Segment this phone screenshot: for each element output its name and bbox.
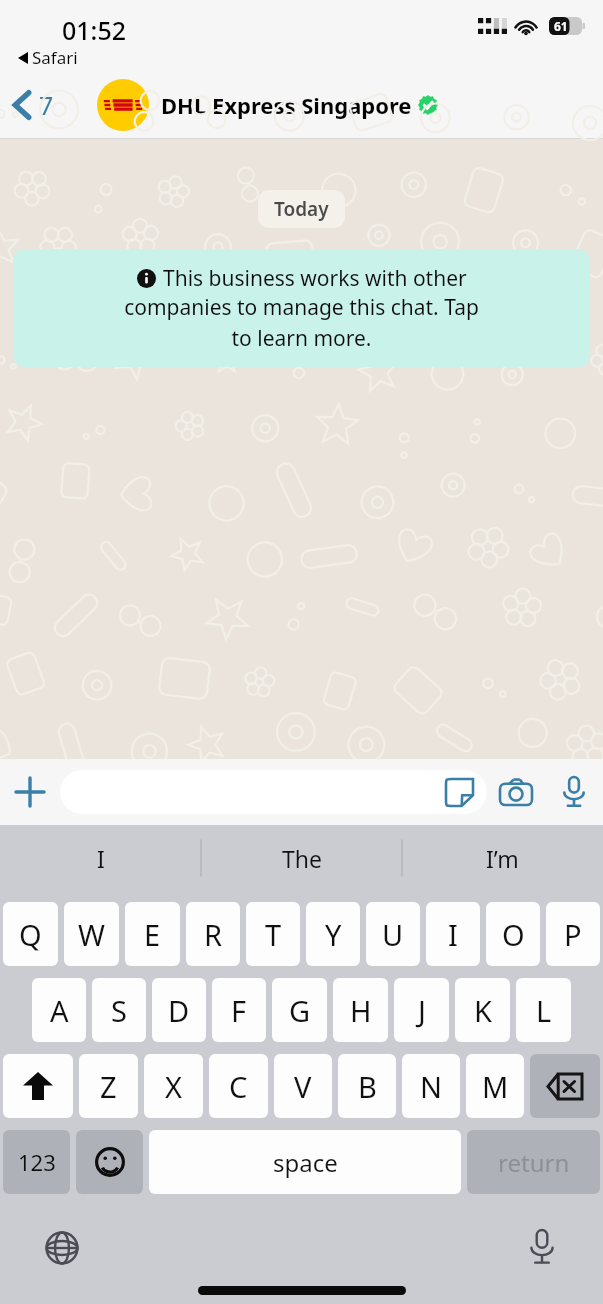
staticText: F (231, 991, 247, 1030)
button[interactable] (60, 770, 487, 814)
staticText: O (502, 915, 525, 954)
staticText: M (482, 1067, 509, 1106)
staticText: U (382, 915, 404, 954)
button[interactable]: C (209, 1054, 268, 1118)
button[interactable]: Attach (0, 762, 60, 822)
button[interactable]: I’m (402, 825, 603, 891)
staticText: return (498, 1146, 570, 1179)
staticText: H (350, 991, 372, 1030)
staticText: J (418, 991, 426, 1030)
button[interactable]: I (0, 825, 201, 891)
button[interactable]: 123 (3, 1130, 70, 1194)
staticText: D (168, 991, 190, 1030)
button[interactable]: Emoji (76, 1130, 143, 1194)
button[interactable]: U (366, 902, 420, 966)
staticText: 7 (39, 88, 54, 122)
button[interactable]: L (516, 978, 571, 1042)
staticText: X (165, 1067, 182, 1106)
button[interactable]: Back, 7 unread (0, 82, 62, 128)
staticText: V (294, 1067, 312, 1106)
button[interactable]: return (467, 1130, 600, 1194)
button[interactable]: space (149, 1130, 461, 1194)
staticText: K (474, 991, 492, 1030)
button[interactable]: M (466, 1054, 524, 1118)
staticText: 61 (554, 18, 568, 34)
staticText: Safari (32, 46, 78, 69)
button[interactable]: S (92, 978, 146, 1042)
button[interactable]: P (546, 902, 600, 966)
button[interactable]: Camera (487, 763, 545, 821)
button[interactable]: N (402, 1054, 460, 1118)
staticText: S (111, 991, 127, 1030)
staticText: The (282, 843, 322, 874)
staticText: T (265, 915, 282, 954)
staticText: DHL Express Singapore (161, 90, 412, 120)
button[interactable]: The (201, 825, 402, 891)
button[interactable]: V (274, 1054, 332, 1118)
staticText: B (358, 1067, 377, 1106)
staticText: companies to manage this chat. Tap to le… (27, 293, 576, 352)
staticText: space (273, 1146, 338, 1179)
button[interactable]: Y (306, 902, 360, 966)
staticText: Y (325, 915, 342, 954)
button[interactable]: G (272, 978, 327, 1042)
staticText: W (78, 915, 105, 954)
button[interactable]: This business works with other (13, 249, 590, 367)
button[interactable]: J (394, 978, 449, 1042)
staticText: Today (274, 196, 329, 222)
button[interactable]: I (426, 902, 480, 966)
button[interactable]: Z (79, 1054, 138, 1118)
button[interactable]: X (144, 1054, 203, 1118)
button[interactable]: W (64, 902, 119, 966)
staticText: Q (19, 915, 42, 954)
staticText: Z (100, 1067, 117, 1106)
button[interactable]: T (246, 902, 300, 966)
staticText: I’m (486, 843, 519, 874)
button[interactable]: A (32, 978, 86, 1042)
button[interactable]: Voice message (545, 763, 603, 821)
staticText: 01:52 (62, 13, 127, 47)
staticText: R (204, 915, 223, 954)
staticText: This business works with other (163, 264, 467, 293)
button[interactable]: Shift (3, 1054, 73, 1118)
button[interactable]: DHL Express Singapore (97, 79, 438, 131)
button[interactable]: Today (258, 190, 345, 228)
button[interactable]: Dictation (519, 1224, 565, 1270)
button[interactable]: K (455, 978, 510, 1042)
staticText: C (229, 1067, 248, 1106)
button[interactable]: H (333, 978, 388, 1042)
button[interactable]: Switch language (40, 1226, 84, 1270)
button[interactable]: B (338, 1054, 396, 1118)
button[interactable]: F (212, 978, 266, 1042)
staticText: E (144, 915, 161, 954)
button[interactable]: Q (3, 902, 58, 966)
staticText: G (289, 991, 311, 1030)
button[interactable]: E (125, 902, 180, 966)
staticText: I (97, 843, 105, 874)
staticText: N (420, 1067, 443, 1106)
staticText: I (448, 915, 458, 954)
button[interactable]: R (186, 902, 240, 966)
button[interactable]: O (486, 902, 540, 966)
button[interactable]: D (152, 978, 206, 1042)
staticText: L (536, 991, 552, 1030)
button[interactable]: Backspace (530, 1054, 600, 1118)
staticText: 123 (18, 1147, 56, 1177)
staticText: A (50, 991, 69, 1030)
staticText: P (564, 915, 582, 954)
